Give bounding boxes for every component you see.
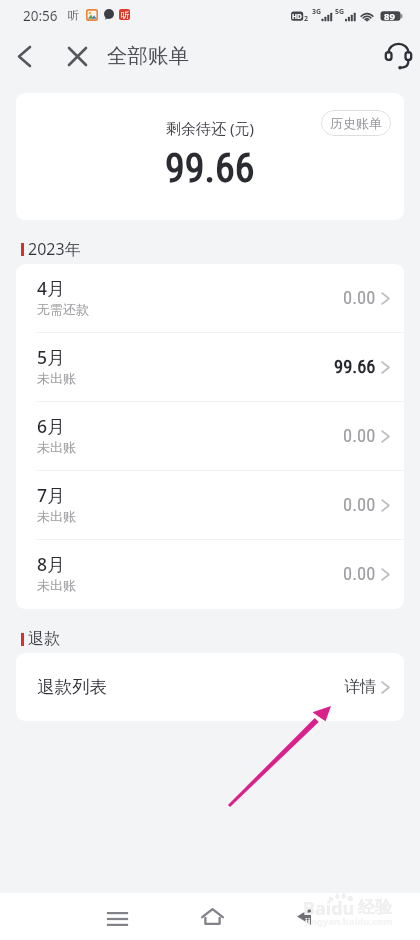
staticText: 0.00 bbox=[343, 287, 376, 309]
staticText: 未出账 bbox=[37, 508, 76, 524]
staticText: 20:56 bbox=[23, 7, 58, 25]
staticText: 全部账单 bbox=[107, 43, 189, 69]
staticText: 99.66 bbox=[165, 145, 255, 192]
staticText: 5G bbox=[335, 7, 345, 17]
staticText: jingyan.baidu.com bbox=[305, 915, 393, 928]
staticText: HD bbox=[292, 12, 302, 21]
staticText: 2 bbox=[304, 14, 309, 24]
button[interactable]: Close bbox=[55, 34, 99, 78]
button[interactable]: 退款列表 bbox=[16, 653, 404, 721]
button[interactable]: Menu bbox=[95, 893, 140, 940]
staticText: 99.66 bbox=[334, 356, 376, 378]
staticText: 未出账 bbox=[37, 439, 76, 455]
staticText: 0.00 bbox=[343, 494, 376, 516]
button[interactable]: Customer service bbox=[376, 34, 420, 78]
staticText: 0.00 bbox=[343, 425, 376, 447]
button[interactable]: 6月 bbox=[16, 402, 404, 471]
button[interactable]: 8月 bbox=[16, 540, 404, 609]
staticText: 退款列表 bbox=[37, 676, 344, 698]
staticText: 未出账 bbox=[37, 577, 76, 593]
staticText: 3G bbox=[312, 7, 322, 17]
staticText: 剩余待还 (元) bbox=[166, 118, 254, 138]
staticText: 7月 bbox=[37, 483, 65, 507]
staticText: 5月 bbox=[37, 345, 65, 369]
staticText: 6月 bbox=[37, 414, 65, 438]
staticText: 8月 bbox=[37, 552, 65, 576]
staticText: 0.00 bbox=[343, 563, 376, 585]
staticText: Baidu bbox=[303, 896, 355, 921]
staticText: 2023年 bbox=[28, 238, 81, 260]
staticText: 未出账 bbox=[37, 370, 76, 386]
button[interactable]: Back bbox=[281, 893, 326, 940]
button[interactable]: Back bbox=[2, 34, 46, 78]
staticText: 无需还款 bbox=[37, 301, 89, 317]
staticText: 听 bbox=[68, 8, 79, 22]
button[interactable]: 7月 bbox=[16, 471, 404, 540]
button[interactable]: Home bbox=[190, 893, 235, 940]
staticText: 4月 bbox=[37, 276, 65, 300]
staticText: 89 bbox=[384, 10, 395, 23]
staticText: 详情 bbox=[344, 677, 376, 697]
staticText: 听 bbox=[121, 10, 129, 20]
staticText: 经验 bbox=[358, 897, 392, 918]
button[interactable]: 历史账单 bbox=[321, 110, 391, 136]
staticText: 退款 bbox=[28, 629, 60, 649]
button[interactable]: 4月 bbox=[16, 264, 404, 333]
staticText: 历史账单 bbox=[330, 115, 382, 131]
button[interactable]: 5月 bbox=[16, 333, 404, 402]
